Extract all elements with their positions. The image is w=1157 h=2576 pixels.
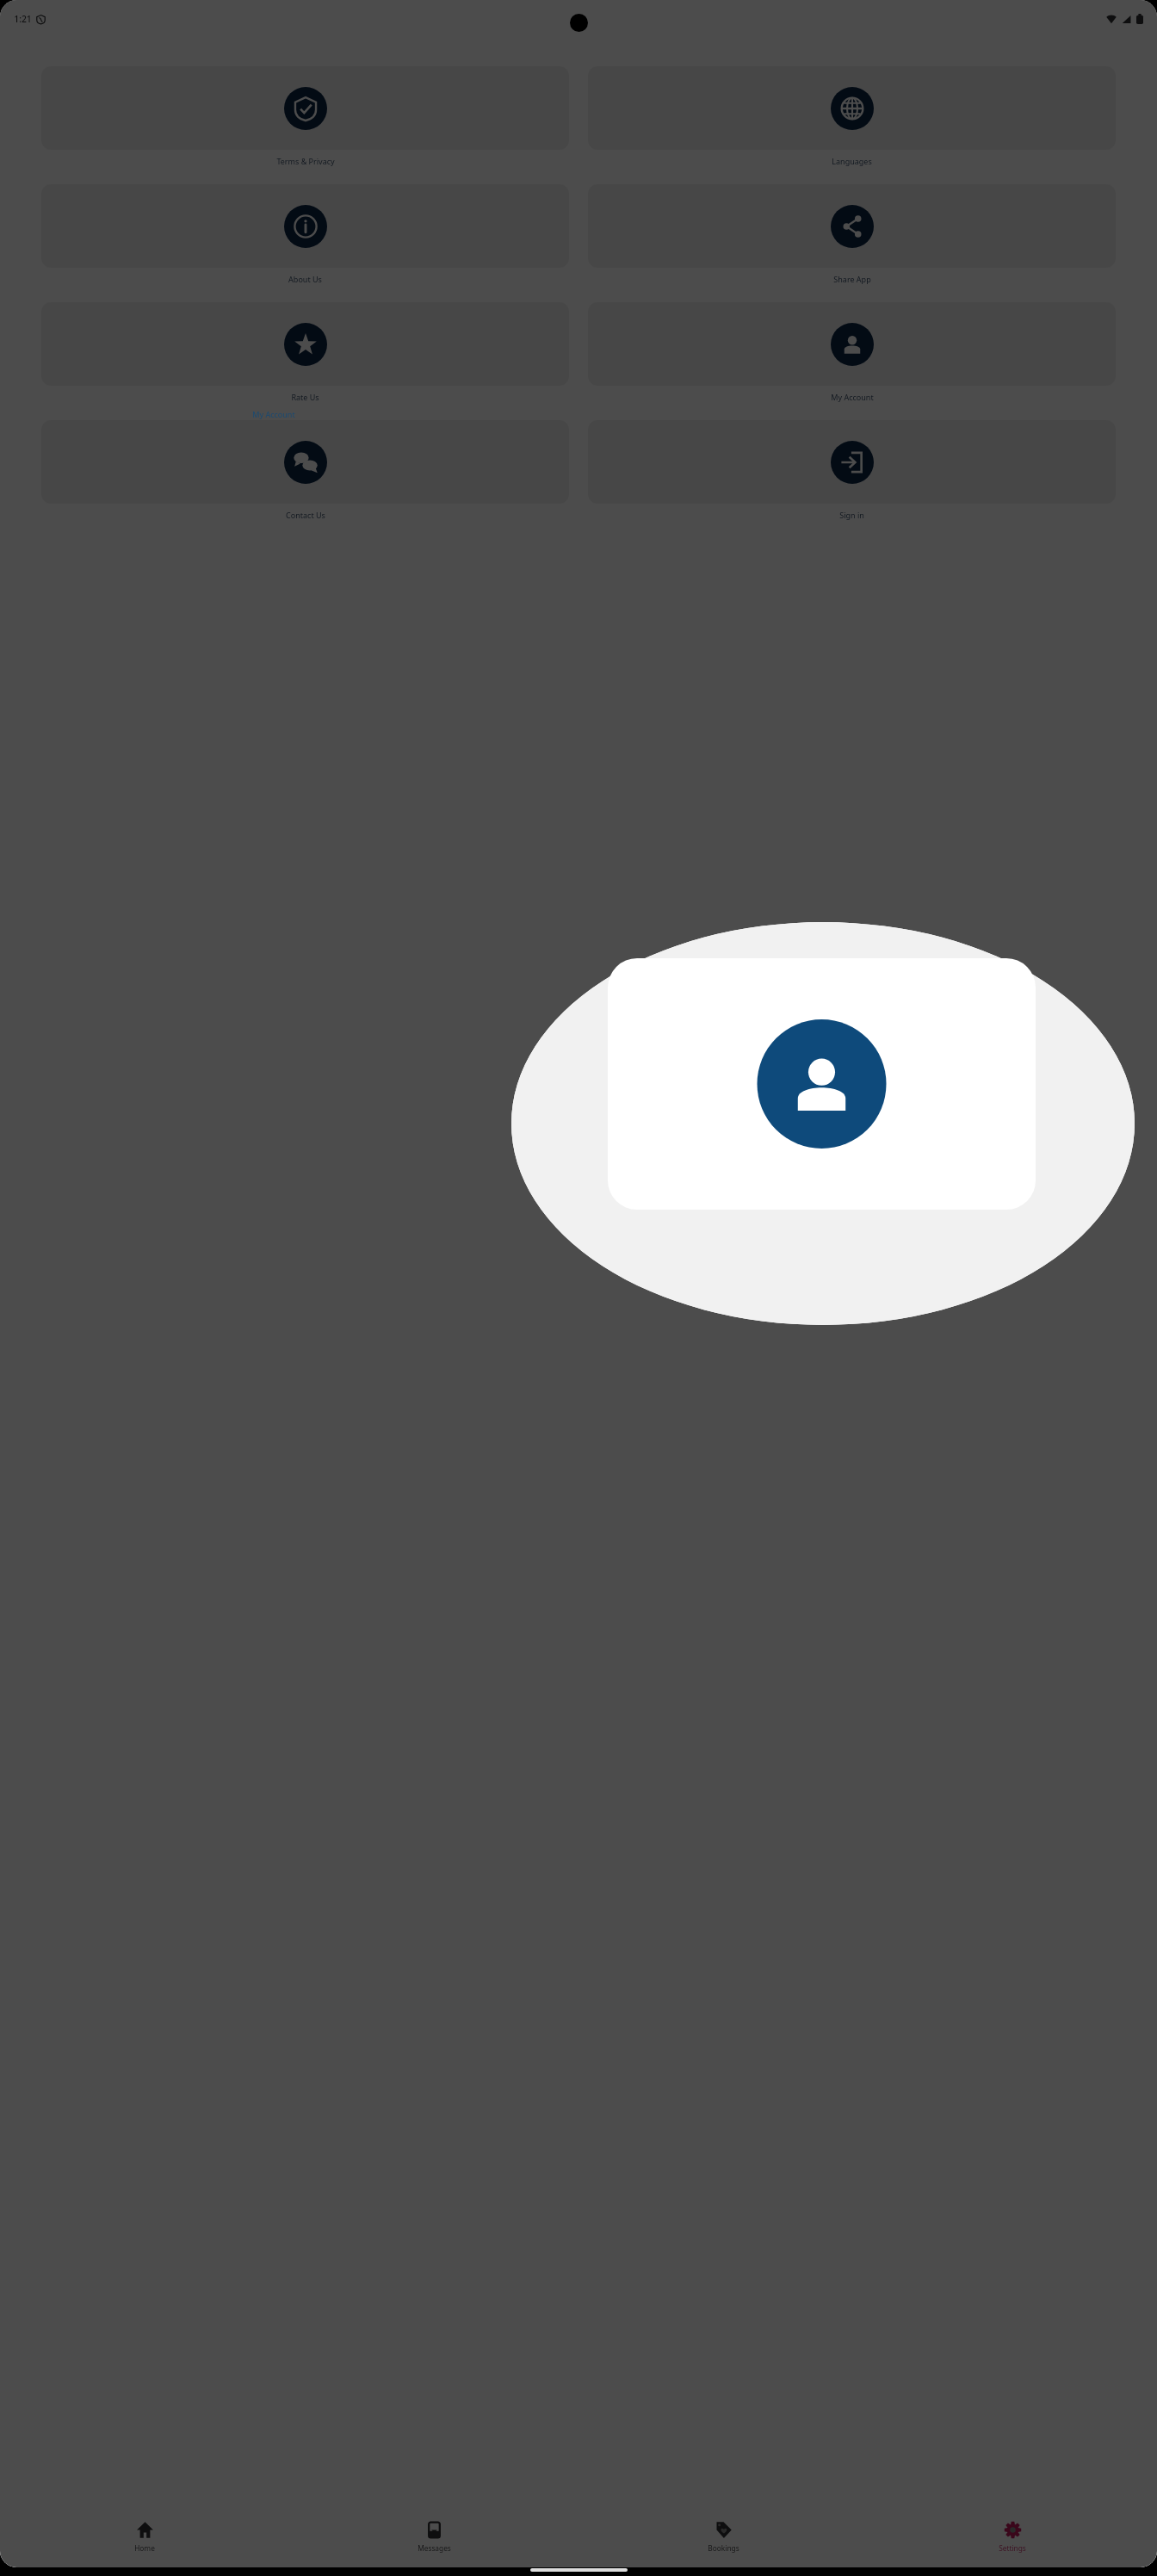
button[interactable]: My Account [202, 319, 345, 419]
button[interactable]: Messages [289, 2510, 578, 2567]
button[interactable]: Contact Us [41, 420, 569, 520]
button[interactable]: Bookings [578, 2510, 868, 2567]
staticText: Languages [832, 156, 872, 166]
button[interactable]: Languages [588, 66, 1116, 166]
staticText: Share App [833, 274, 871, 284]
button[interactable]: My Account [588, 302, 1116, 402]
staticText: Bookings [708, 2543, 739, 2553]
staticText: Contact Us [286, 510, 325, 520]
staticText: 1:21 [14, 13, 32, 25]
staticText: Messages [418, 2543, 451, 2553]
staticText: Sign in [839, 510, 864, 520]
staticText: About Us [288, 274, 322, 284]
staticText: Terms & Privacy [276, 156, 335, 166]
staticText: Settings [999, 2543, 1026, 2553]
staticText: My Account [831, 392, 874, 402]
button[interactable]: Rate Us [41, 302, 569, 402]
button[interactable]: About Us [41, 184, 569, 284]
staticText: My Account [252, 409, 295, 419]
staticText: Home [134, 2543, 155, 2553]
button[interactable]: Home [0, 2510, 289, 2567]
staticText: Rate Us [291, 392, 319, 402]
button[interactable]: Share App [588, 184, 1116, 284]
button[interactable]: Terms & Privacy [41, 66, 569, 166]
button[interactable]: Settings [868, 2510, 1157, 2567]
button[interactable]: Sign in [588, 420, 1116, 520]
